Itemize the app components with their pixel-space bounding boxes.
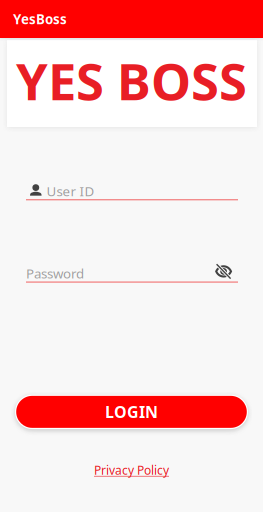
staticText: YES BOSS (16, 47, 247, 114)
staticText: LOGIN (105, 401, 158, 422)
button[interactable]: Password (26, 265, 238, 283)
button[interactable]: User ID (26, 183, 238, 200)
staticText: Privacy Policy (94, 462, 169, 478)
button[interactable]: Privacy Policy (94, 458, 169, 482)
staticText: Password (26, 264, 84, 282)
button[interactable]: LOGIN (15, 395, 248, 429)
staticText: User ID (47, 182, 95, 200)
staticText: YesBoss (13, 10, 67, 28)
